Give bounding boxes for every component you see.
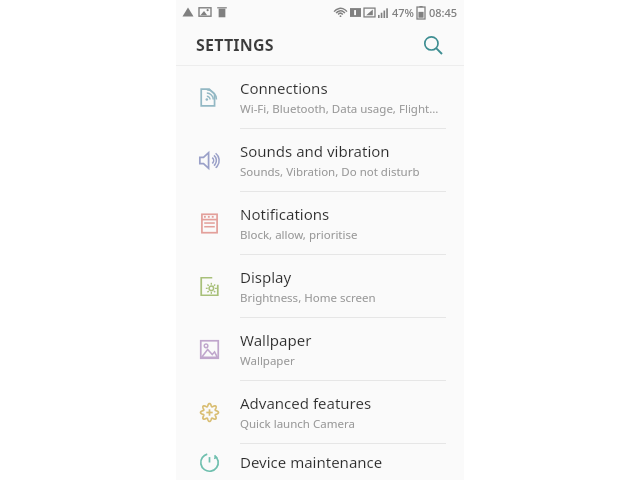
button[interactable]: Search xyxy=(416,28,450,62)
staticText: Sounds and vibration xyxy=(240,141,390,161)
staticText: Wi-Fi, Bluetooth, Data usage, Flight… xyxy=(240,101,439,117)
button[interactable]: Notifications xyxy=(176,192,464,254)
button[interactable]: Device maintenance xyxy=(176,444,464,480)
staticText: Advanced features xyxy=(240,393,372,413)
staticText: Sounds, Vibration, Do not disturb xyxy=(240,164,420,180)
staticText: SETTINGS xyxy=(196,34,274,56)
button[interactable]: Connections xyxy=(176,66,464,128)
staticText: 08:45 xyxy=(429,5,458,20)
staticText: Device maintenance xyxy=(240,452,383,472)
staticText: Wallpaper xyxy=(240,353,295,369)
staticText: Connections xyxy=(240,78,328,98)
button[interactable]: Display xyxy=(176,255,464,317)
button[interactable]: Wallpaper xyxy=(176,318,464,380)
staticText: Notifications xyxy=(240,204,330,224)
staticText: Block, allow, prioritise xyxy=(240,227,358,243)
button[interactable]: Advanced features xyxy=(176,381,464,443)
button[interactable]: Sounds and vibration xyxy=(176,129,464,191)
staticText: Brightness, Home screen xyxy=(240,290,376,306)
staticText: Display xyxy=(240,267,292,287)
staticText: 47% xyxy=(392,5,414,20)
staticText: Quick launch Camera xyxy=(240,416,355,432)
staticText: Wallpaper xyxy=(240,330,312,350)
